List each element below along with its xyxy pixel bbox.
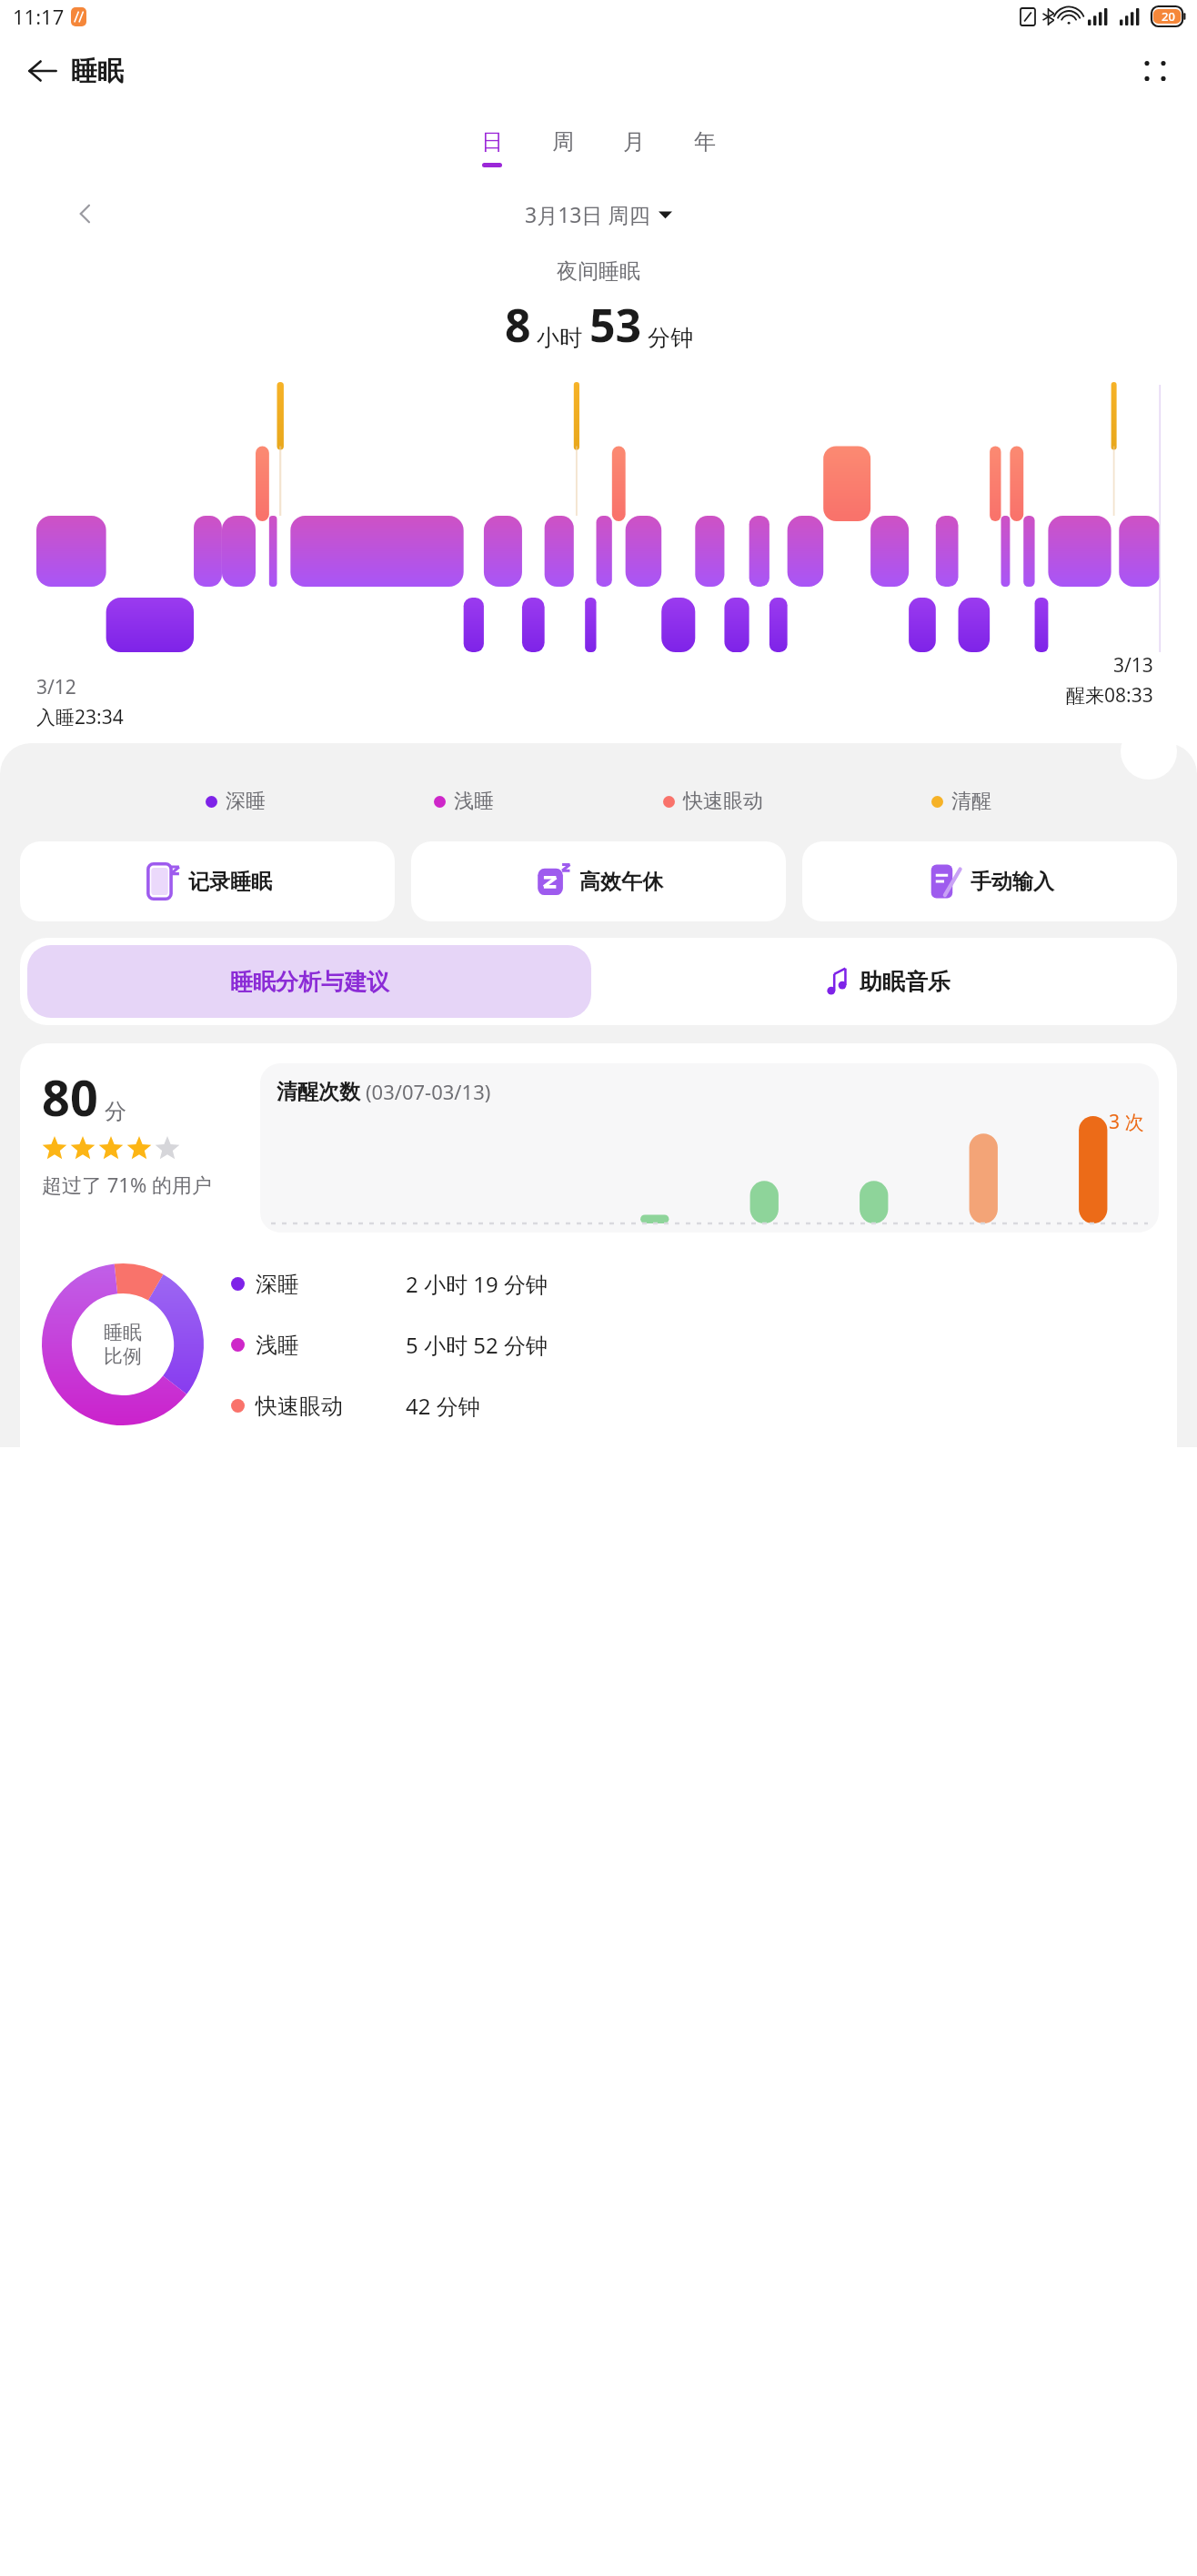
staticText: 快速眼动 (256, 1393, 343, 1420)
staticText: 53 (589, 294, 642, 356)
button[interactable]: 手动输入 (802, 841, 1177, 921)
button[interactable]: 高效午休 (411, 841, 786, 921)
staticText: 月 (623, 128, 645, 156)
staticText: 清醒次数 (277, 1079, 360, 1105)
button[interactable]: Back (16, 45, 67, 96)
staticText: 周 (552, 128, 574, 156)
staticText: 日 (481, 128, 503, 156)
staticText: 手动输入 (971, 869, 1054, 895)
button[interactable]: More options (1130, 45, 1181, 96)
staticText: 清醒 (951, 789, 991, 814)
button[interactable]: 睡眠分析与建议 (27, 945, 591, 1018)
staticText: 浅睡 (256, 1332, 299, 1359)
staticText: 8 (505, 294, 531, 356)
staticText: 5 小时 52 分钟 (406, 1330, 548, 1360)
staticText: 3 次 (1109, 1109, 1144, 1135)
button[interactable]: Previous day (64, 192, 107, 236)
button[interactable]: Sleep details (1121, 723, 1177, 780)
staticText: 80 (42, 1063, 98, 1131)
staticText: 入睡23:34 (36, 704, 124, 730)
staticText: 42 分钟 (406, 1391, 480, 1421)
button[interactable]: 记录睡眠 (20, 841, 395, 921)
staticText: 夜间睡眠 (557, 258, 640, 285)
staticText: 深睡 (256, 1271, 299, 1298)
staticText: 深睡 (226, 789, 266, 814)
staticText: 浅睡 (454, 789, 494, 814)
staticText: 记录睡眠 (188, 869, 272, 895)
staticText: 睡眠分析与建议 (230, 968, 389, 996)
button[interactable]: 月 (598, 112, 669, 183)
staticText: 11:17 (13, 3, 65, 30)
staticText: 3/13 (1113, 652, 1153, 679)
staticText: 年 (694, 128, 716, 156)
staticText: 快速眼动 (683, 789, 763, 814)
staticText: (03/07-03/13) (366, 1078, 491, 1105)
staticText: 3月13日 周四 (525, 200, 650, 228)
button[interactable]: 周 (528, 112, 598, 183)
button[interactable]: 年 (669, 112, 740, 183)
button[interactable]: 日 (457, 112, 528, 183)
button[interactable]: 3月13日 周四 (525, 200, 672, 228)
staticText: 睡眠 (104, 1321, 142, 1344)
staticText: 2 小时 19 分钟 (406, 1269, 548, 1299)
staticText: 高效午休 (579, 869, 663, 895)
staticText: 20 (1162, 8, 1175, 25)
staticText: 比例 (104, 1344, 142, 1368)
button[interactable]: 助眠音乐 (598, 938, 1177, 1025)
staticText: 醒来08:33 (1066, 682, 1153, 709)
staticText: 睡眠 (71, 55, 124, 88)
staticText: 分钟 (648, 324, 693, 352)
staticText: 分 (105, 1098, 126, 1125)
staticText: 助眠音乐 (860, 968, 951, 996)
staticText: 超过了 71% 的用户 (42, 1171, 212, 1198)
staticText: 3/12 (36, 674, 76, 700)
staticText: 小时 (537, 324, 582, 352)
